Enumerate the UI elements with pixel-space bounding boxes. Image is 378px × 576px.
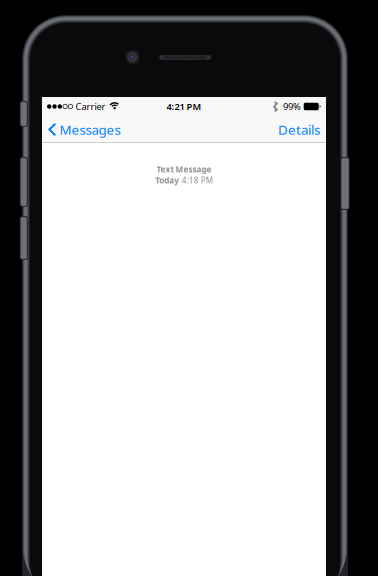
staticText: Details [278, 121, 320, 138]
staticText: Carrier [76, 100, 106, 113]
staticText: 4:18 PM [182, 175, 213, 186]
staticText: 4:21 PM [166, 100, 201, 113]
staticText: Today [155, 175, 179, 186]
staticText: 99% [283, 100, 301, 113]
staticText: Messages [60, 121, 121, 138]
staticText: Text Message [156, 164, 211, 175]
button[interactable]: Messages [42, 116, 129, 143]
button[interactable]: Details [268, 116, 326, 143]
